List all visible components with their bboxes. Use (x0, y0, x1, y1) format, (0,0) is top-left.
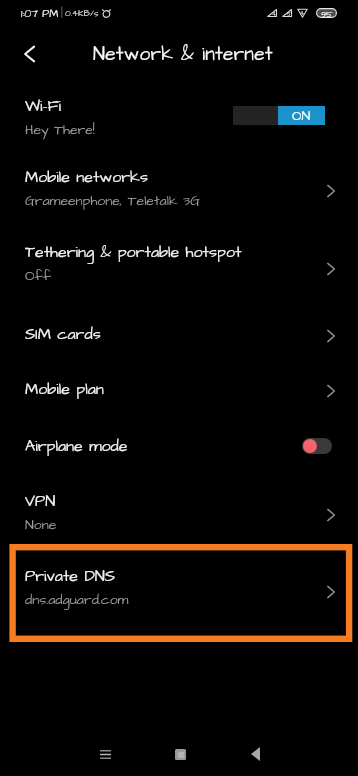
staticText: Airplane mode (25, 435, 128, 457)
button[interactable]: Recent apps (85, 734, 125, 774)
staticText: Hey There! (25, 120, 95, 139)
staticText: Off (25, 266, 52, 285)
staticText: 5 (287, 10, 292, 18)
button[interactable]: Back (235, 734, 275, 774)
staticText: VPN (25, 490, 56, 512)
staticText: dns.adguard.com (25, 590, 129, 609)
staticText: Wi-Fi (25, 95, 61, 117)
staticText: Mobile plan (25, 378, 104, 400)
button[interactable]: Wi-Fi (0, 86, 358, 138)
staticText: | (61, 6, 63, 21)
button[interactable]: Airplane mode (0, 429, 358, 463)
button[interactable]: Home (160, 734, 200, 774)
staticText: 0.4KB/s (65, 7, 99, 20)
staticText: 1:07 PM (21, 6, 59, 21)
staticText: Network & internet (93, 41, 273, 67)
button[interactable]: Back (11, 35, 48, 72)
staticText: SIM cards (25, 323, 101, 345)
button[interactable]: Airplane mode switch (302, 438, 332, 454)
staticText: Private DNS (25, 565, 116, 587)
button[interactable]: Private DNS (0, 556, 358, 608)
staticText: None (25, 515, 57, 534)
staticText: 95 (321, 8, 333, 18)
button[interactable]: SIM cards (0, 317, 358, 351)
staticText: Mobile networks (25, 166, 148, 188)
button[interactable]: Tethering & portable hotspot (0, 232, 358, 284)
button[interactable]: Mobile networks (0, 157, 358, 209)
button[interactable]: VPN (0, 481, 358, 533)
staticText: ON (292, 106, 311, 125)
staticText: 4 (272, 10, 277, 18)
staticText: 4 (300, 9, 305, 17)
button[interactable]: Wi-Fi switch (233, 106, 325, 125)
staticText: Grameenphone, Teletalk 3G (25, 191, 200, 210)
button[interactable]: Mobile plan (0, 372, 358, 406)
staticText: Tethering & portable hotspot (25, 241, 242, 263)
